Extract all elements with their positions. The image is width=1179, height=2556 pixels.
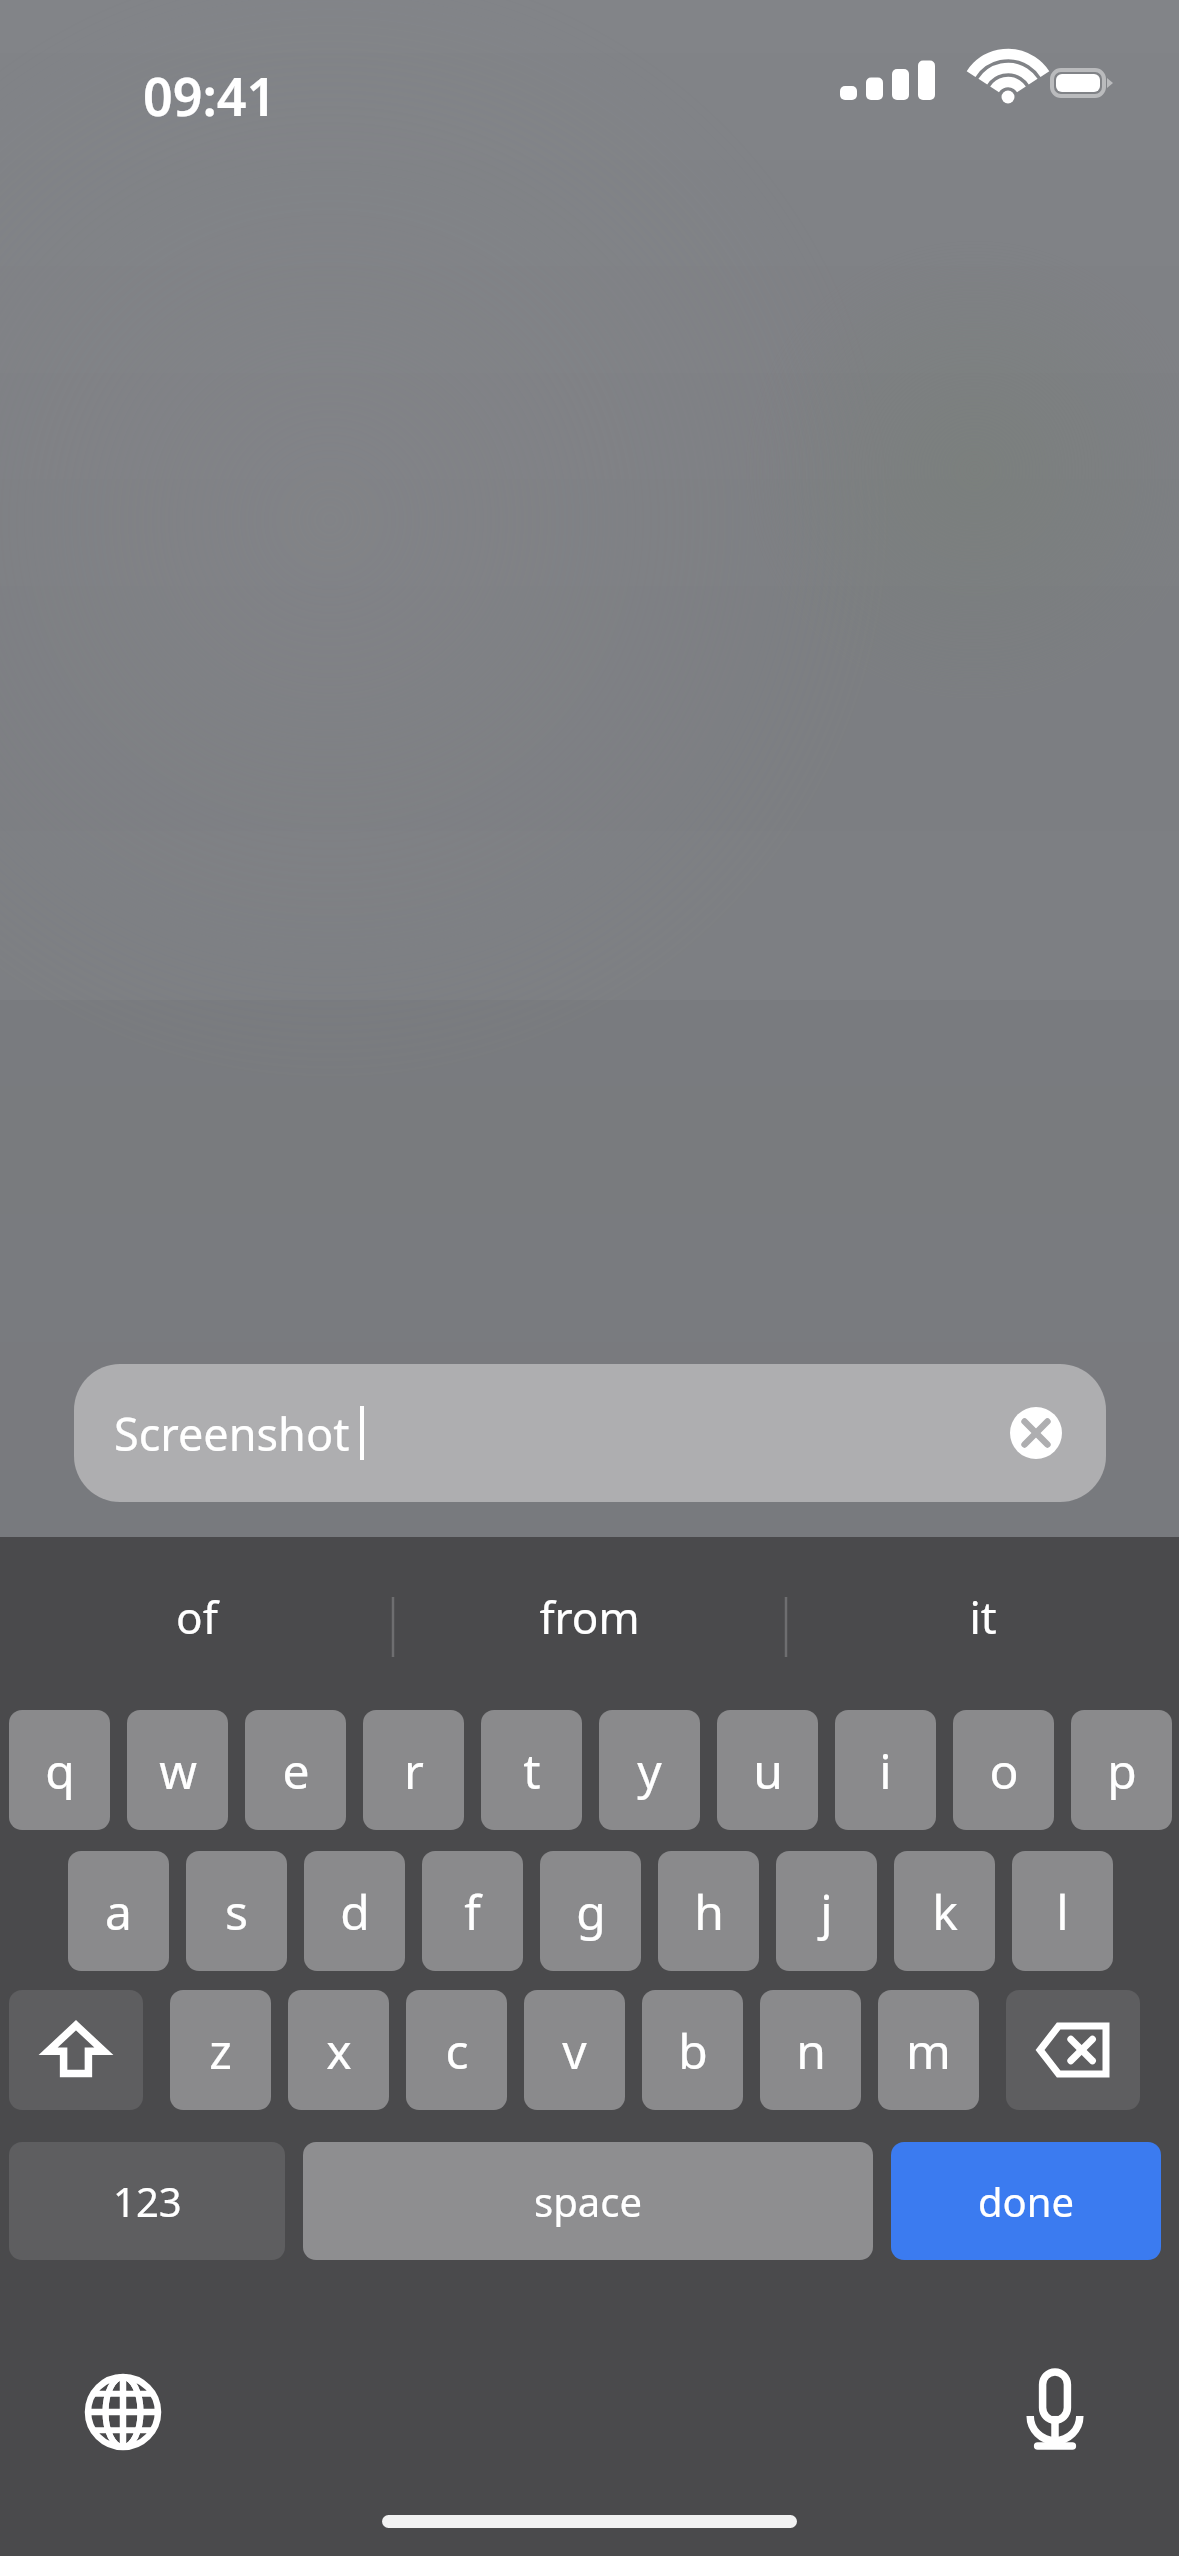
button[interactable]: Shift — [9, 1990, 143, 2110]
staticText: v — [562, 2018, 587, 2083]
button[interactable]: o — [953, 1710, 1054, 1830]
button[interactable]: q — [9, 1710, 110, 1830]
button[interactable]: p — [1071, 1710, 1172, 1830]
button[interactable]: of — [0, 1537, 393, 1697]
button[interactable]: from — [393, 1537, 786, 1697]
button[interactable]: g — [540, 1851, 641, 1971]
button[interactable]: z — [170, 1990, 271, 2110]
button[interactable]: t — [481, 1710, 582, 1830]
staticText: t — [523, 1738, 541, 1803]
staticText: 123 — [113, 2174, 182, 2228]
button[interactable]: b — [642, 1990, 743, 2110]
button[interactable]: l — [1012, 1851, 1113, 1971]
staticText: z — [209, 2018, 232, 2083]
staticText: space — [534, 2174, 642, 2228]
button[interactable]: h — [658, 1851, 759, 1971]
staticText: q — [45, 1738, 75, 1803]
staticText: e — [282, 1738, 310, 1803]
staticText: y — [637, 1738, 662, 1803]
staticText: u — [753, 1738, 783, 1803]
button[interactable]: i — [835, 1710, 936, 1830]
button[interactable]: a — [68, 1851, 169, 1971]
staticText: s — [225, 1879, 248, 1944]
staticText: Screenshot — [114, 1403, 350, 1464]
button[interactable]: j — [776, 1851, 877, 1971]
button[interactable]: Clear text — [1010, 1407, 1062, 1459]
button[interactable]: y — [599, 1710, 700, 1830]
staticText: w — [159, 1738, 197, 1803]
button[interactable]: s — [186, 1851, 287, 1971]
staticText: b — [678, 2018, 708, 2083]
button[interactable]: v — [524, 1990, 625, 2110]
staticText: p — [1107, 1738, 1137, 1803]
button[interactable]: m — [878, 1990, 979, 2110]
staticText: x — [326, 2018, 352, 2083]
staticText: 09:41 — [143, 60, 277, 131]
staticText: l — [1056, 1879, 1069, 1944]
button[interactable]: Switch keyboard language — [78, 2367, 168, 2457]
button[interactable]: k — [894, 1851, 995, 1971]
button[interactable]: u — [717, 1710, 818, 1830]
staticText: done — [978, 2174, 1075, 2228]
staticText: n — [796, 2018, 826, 2083]
button[interactable]: f — [422, 1851, 523, 1971]
staticText: a — [105, 1879, 132, 1944]
staticText: d — [340, 1879, 370, 1944]
staticText: from — [539, 1587, 640, 1647]
button[interactable]: 123 — [9, 2142, 285, 2260]
staticText: of — [176, 1587, 218, 1647]
staticText: o — [989, 1738, 1019, 1803]
staticText: j — [820, 1879, 833, 1944]
button[interactable]: n — [760, 1990, 861, 2110]
button[interactable]: Dictate — [1010, 2367, 1100, 2457]
button[interactable]: x — [288, 1990, 389, 2110]
staticText: r — [404, 1738, 424, 1803]
button[interactable]: Screenshot — [74, 1364, 1106, 1502]
button[interactable]: e — [245, 1710, 346, 1830]
staticText: k — [932, 1879, 958, 1944]
staticText: i — [879, 1738, 892, 1803]
button[interactable]: r — [363, 1710, 464, 1830]
staticText: f — [464, 1879, 481, 1944]
staticText: h — [694, 1879, 724, 1944]
button[interactable]: it — [786, 1537, 1179, 1697]
button[interactable]: w — [127, 1710, 228, 1830]
button[interactable]: c — [406, 1990, 507, 2110]
button[interactable]: d — [304, 1851, 405, 1971]
staticText: g — [576, 1879, 606, 1944]
button[interactable]: done — [891, 2142, 1161, 2260]
staticText: it — [969, 1587, 997, 1647]
staticText: c — [445, 2018, 469, 2083]
button[interactable]: space — [303, 2142, 873, 2260]
staticText: m — [906, 2018, 951, 2083]
button[interactable]: Backspace — [1006, 1990, 1140, 2110]
